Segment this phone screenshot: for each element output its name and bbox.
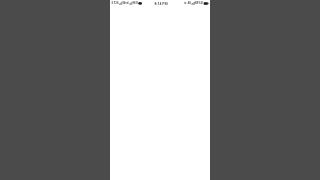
staticText: ≡	[184, 1, 187, 5]
staticText: 88%	[195, 1, 201, 5]
staticText: Il	[111, 1, 113, 5]
staticText: 96%	[132, 1, 138, 5]
staticText: 126	[114, 1, 119, 5]
other: Status bar	[110, 0, 210, 10]
staticText: 4G	[187, 1, 191, 5]
staticText: Wed	[122, 1, 129, 5]
staticText: Il	[201, 1, 203, 5]
staticText: 8:14 PM	[154, 1, 168, 6]
